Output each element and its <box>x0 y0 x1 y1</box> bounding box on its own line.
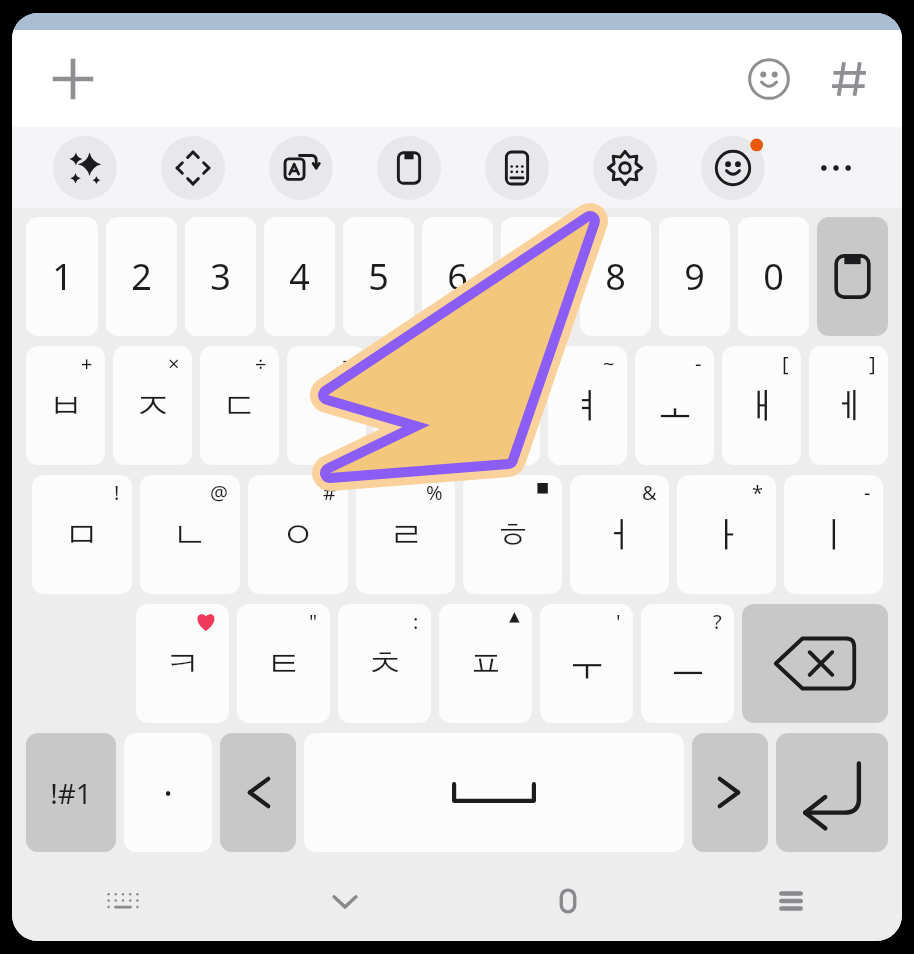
button[interactable]: ㄷ <box>200 346 279 465</box>
button[interactable]: · <box>124 733 212 852</box>
staticText: ㄹ <box>388 512 424 557</box>
staticText: # <box>323 479 336 506</box>
button[interactable]: ㅔ <box>809 346 888 465</box>
button[interactable]: Recent apps <box>679 861 902 941</box>
staticText: ] <box>869 350 876 377</box>
staticText: ㅓ <box>602 512 638 557</box>
button[interactable]: ㅈ <box>113 346 192 465</box>
button[interactable]: ㅗ <box>635 346 714 465</box>
button[interactable]: ㅍ <box>439 604 532 723</box>
button[interactable]: ㅕ <box>548 346 627 465</box>
button[interactable]: ㄹ <box>356 475 455 594</box>
staticText: !#1 <box>50 774 92 812</box>
staticText: ■ <box>536 479 550 495</box>
button[interactable]: ㅡ <box>641 604 734 723</box>
button[interactable]: ㅋ <box>136 604 229 723</box>
staticText: - <box>695 350 702 377</box>
button[interactable]: 9 <box>659 217 730 336</box>
button[interactable]: Keyboard layout <box>463 127 571 208</box>
staticText: 3 <box>210 252 231 301</box>
button[interactable]: Change keyboard <box>12 861 234 941</box>
staticText: ㄱ <box>309 383 345 428</box>
button[interactable]: ㅛ <box>461 346 540 465</box>
button[interactable]: AI suggestions <box>30 127 139 208</box>
button[interactable]: ㅐ <box>722 346 801 465</box>
staticText: ' <box>616 608 621 635</box>
button[interactable]: ㄴ <box>140 475 240 594</box>
staticText: × <box>168 350 180 377</box>
button[interactable]: 7 <box>501 217 572 336</box>
staticText: - <box>864 479 871 506</box>
button[interactable]: ㅜ <box>540 604 633 723</box>
staticText: ㅐ <box>744 383 780 428</box>
button[interactable]: ㅣ <box>784 475 883 594</box>
staticText: ㅕ <box>570 383 606 428</box>
staticText: ㅏ <box>709 512 745 557</box>
staticText: ㅣ <box>816 512 852 557</box>
button[interactable]: Backspace <box>742 604 888 723</box>
staticText: ! <box>114 479 120 506</box>
staticText: ㅈ <box>135 383 171 428</box>
staticText: 7 <box>526 252 547 301</box>
button[interactable]: ㅏ <box>677 475 776 594</box>
staticText: " <box>309 608 318 635</box>
staticText: ㅅ <box>396 383 432 428</box>
button[interactable]: ㅊ <box>338 604 431 723</box>
button[interactable]: Enter <box>776 733 888 852</box>
staticText: & <box>642 479 657 506</box>
button[interactable]: 5 <box>343 217 414 336</box>
button[interactable]: ㅅ <box>374 346 453 465</box>
button[interactable]: 0 <box>738 217 809 336</box>
staticText: 6 <box>447 252 468 301</box>
button[interactable]: More options <box>787 127 884 208</box>
button[interactable]: ㅌ <box>237 604 330 723</box>
button[interactable]: Translate <box>247 127 355 208</box>
button[interactable]: ㄱ <box>287 346 366 465</box>
button[interactable]: Hashtag <box>822 50 880 108</box>
button[interactable]: 3 <box>185 217 256 336</box>
staticText: 9 <box>684 252 705 301</box>
staticText: : <box>413 608 419 635</box>
button[interactable]: 1 <box>26 217 98 336</box>
staticText: ㅜ <box>569 641 605 686</box>
button[interactable]: !#1 <box>26 733 116 852</box>
staticText: @ <box>210 479 228 506</box>
staticText: ÷ <box>255 350 267 377</box>
button[interactable]: Home <box>456 861 679 941</box>
button[interactable]: Clipboard <box>817 217 888 336</box>
button[interactable]: Emoji <box>740 50 798 108</box>
staticText: ㄷ <box>222 383 258 428</box>
button[interactable]: Move cursor right <box>692 733 768 852</box>
button[interactable]: Move cursor <box>139 127 247 208</box>
button[interactable]: Settings <box>571 127 679 208</box>
button[interactable]: 4 <box>264 217 335 336</box>
staticText: 8 <box>605 252 626 301</box>
staticText: 0 <box>763 252 784 301</box>
button[interactable]: Space <box>304 733 684 852</box>
staticText: % <box>426 479 443 506</box>
staticText: ㅁ <box>64 512 100 557</box>
staticText: ㄴ <box>172 512 208 557</box>
button[interactable]: Clipboard <box>355 127 463 208</box>
button[interactable]: Move cursor left <box>220 733 296 852</box>
button[interactable]: ㅎ <box>463 475 562 594</box>
button[interactable]: Hide keyboard <box>234 861 456 941</box>
button[interactable]: ㅁ <box>32 475 132 594</box>
staticText: ㅔ <box>831 383 867 428</box>
staticText: ㅊ <box>367 641 403 686</box>
button[interactable]: Add <box>46 52 100 106</box>
button[interactable]: ㅂ <box>26 346 105 465</box>
staticText: [ <box>782 350 789 377</box>
button[interactable]: 8 <box>580 217 651 336</box>
staticText: ? <box>713 608 722 635</box>
staticText: ㅡ <box>670 641 706 686</box>
button[interactable]: Stickers <box>679 127 787 208</box>
button[interactable]: 6 <box>422 217 493 336</box>
button[interactable]: 2 <box>106 217 177 336</box>
staticText: ㅂ <box>48 383 84 428</box>
button[interactable]: ㅇ <box>248 475 348 594</box>
button[interactable]: ㅓ <box>570 475 669 594</box>
